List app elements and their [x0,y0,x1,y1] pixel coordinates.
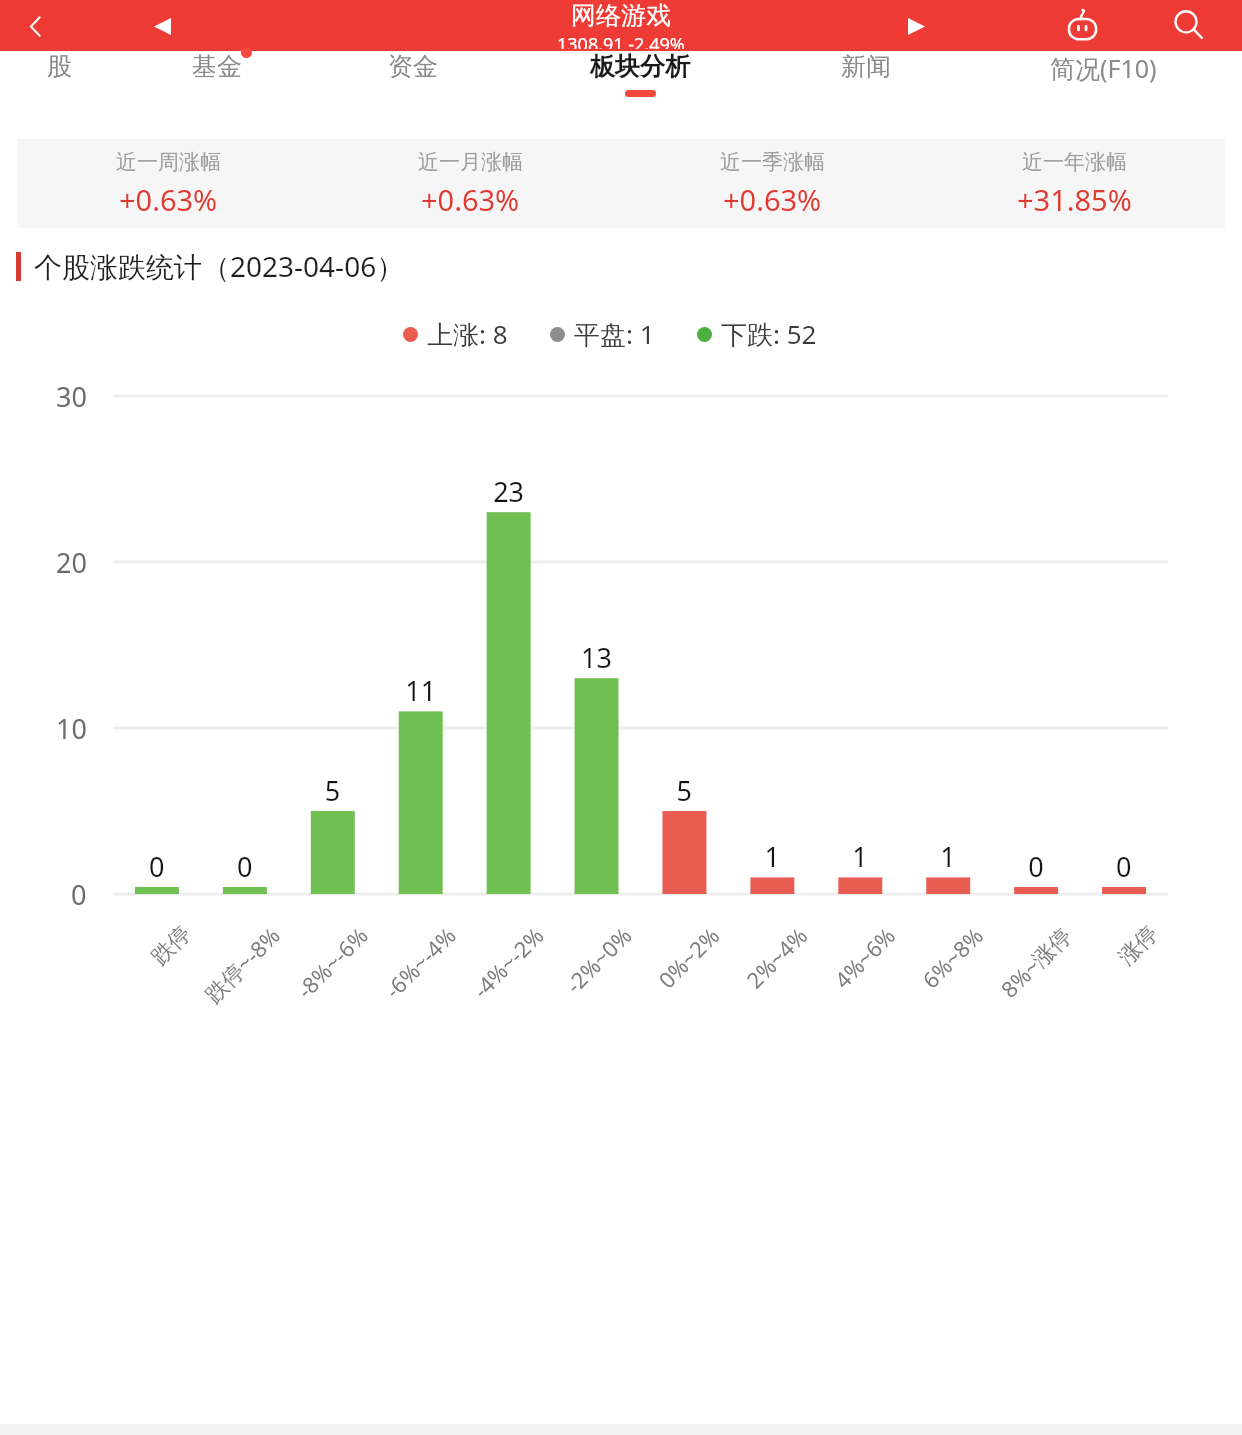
button[interactable]: 新闻 [768,51,964,126]
button[interactable]: 资金 [315,51,511,126]
staticText: 板块分析 [590,51,690,82]
staticText: +31.85% [1017,180,1132,219]
button[interactable]: AI assistant [1056,0,1108,51]
staticText: 近一季涨幅 [720,149,825,175]
staticText: 简况(F10) [1050,51,1157,85]
staticText: 网络游戏 [571,0,671,31]
staticText: 股 [47,51,72,82]
staticText: 平盘: 1 [574,316,655,352]
staticText: 上涨: 8 [427,316,508,352]
staticText: 资金 [388,51,438,82]
button[interactable]: 板块分析 [511,51,768,126]
staticText: 近一年涨幅 [1022,149,1127,175]
staticText: +0.63% [119,180,218,219]
staticText: +0.63% [421,180,520,219]
staticText: 1308.91 -2.49% [557,32,685,49]
button[interactable]: 基金 [119,51,315,126]
staticText: +0.63% [723,180,822,219]
button[interactable]: Next sector [892,2,940,50]
button[interactable]: 股 [0,51,119,126]
button[interactable]: Previous sector [138,2,186,50]
staticText: 下跌: 52 [721,316,817,352]
button[interactable]: Back [12,3,58,49]
staticText: 个股涨跌统计（2023-04-06） [34,247,405,285]
button[interactable]: 简况(F10) [964,51,1242,126]
staticText: 基金 [192,51,242,82]
button[interactable]: Search [1162,0,1214,51]
staticText: 新闻 [841,51,891,82]
staticText: 近一周涨幅 [116,149,221,175]
staticText: 近一月涨幅 [418,149,523,175]
